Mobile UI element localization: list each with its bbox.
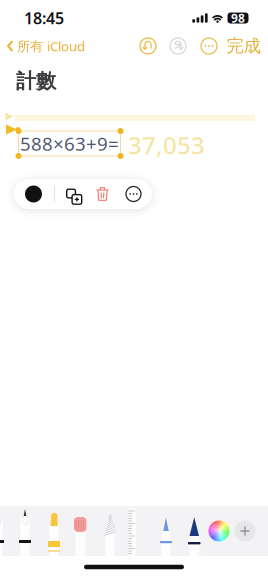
button[interactable]: Brush	[104, 508, 116, 556]
button[interactable]: Eraser	[74, 508, 86, 556]
button[interactable]: Pen	[19, 508, 31, 556]
staticText: 完成	[226, 35, 260, 57]
button[interactable]: Colour	[14, 179, 54, 209]
button[interactable]: Delete	[87, 179, 118, 209]
button[interactable]: 完成	[221, 30, 265, 62]
button[interactable]: Blue pen	[160, 508, 172, 556]
button[interactable]: Navy pen	[188, 508, 200, 556]
button[interactable]: 所有 iCloud	[0, 31, 110, 61]
staticText: 計數	[16, 69, 56, 93]
button[interactable]: Add tool	[234, 520, 255, 541]
button[interactable]: More	[197, 34, 221, 58]
button[interactable]: More options	[118, 179, 152, 209]
button[interactable]: Ruler	[128, 508, 136, 556]
staticText: 588×63+9=	[20, 131, 119, 156]
button[interactable]: Duplicate	[55, 179, 87, 209]
button[interactable]: Previous tool	[0, 508, 4, 556]
staticText: 98	[231, 10, 245, 26]
button[interactable]: Colour picker	[208, 520, 229, 541]
staticText: 所有 iCloud	[17, 37, 85, 55]
button[interactable]: Redo	[166, 34, 190, 58]
staticText: 18:45	[24, 7, 64, 29]
button[interactable]: Highlighter	[48, 508, 60, 556]
staticText: 37,053	[128, 129, 205, 161]
button[interactable]: Undo	[136, 34, 160, 58]
